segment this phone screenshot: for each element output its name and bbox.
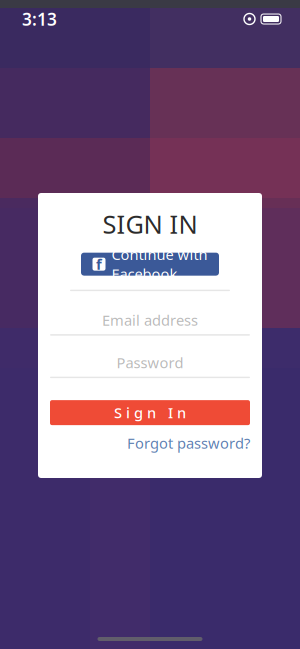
button[interactable]: S i g n I n (50, 400, 250, 425)
button[interactable]: f (81, 253, 219, 276)
staticText: Password (116, 353, 183, 372)
staticText: 3:13 (22, 7, 57, 30)
staticText: SIGN IN (102, 207, 197, 241)
button[interactable]: Forgot password? (50, 433, 250, 453)
staticText: Continue with Facebook (111, 245, 207, 284)
staticText: Email address (102, 310, 198, 330)
staticText: S i g n I n (114, 403, 186, 422)
staticText: Forgot password? (127, 433, 250, 453)
staticText: f (96, 254, 102, 274)
